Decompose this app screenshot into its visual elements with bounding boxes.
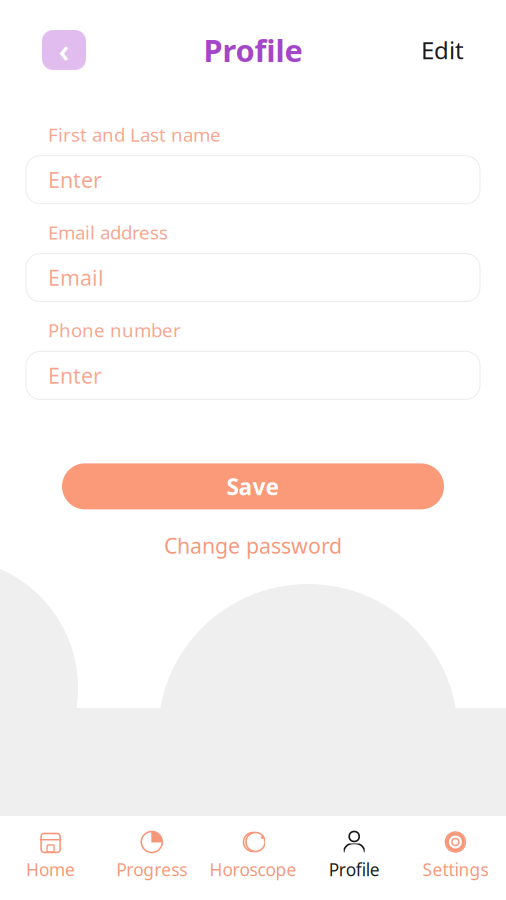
staticText: Profile [329, 858, 380, 881]
button[interactable]: Change password [152, 525, 354, 566]
button[interactable]: Edit [413, 26, 472, 74]
button[interactable]: Settings [405, 824, 506, 888]
button[interactable]: Enter [26, 156, 480, 204]
staticText: Profile [203, 30, 302, 70]
staticText: Progress [116, 858, 187, 881]
button[interactable]: Email [26, 254, 480, 302]
staticText: Email [48, 263, 104, 292]
staticText: Phone number [48, 318, 181, 342]
button[interactable]: Home [0, 824, 101, 888]
staticText: Enter [48, 166, 102, 194]
staticText: Home [26, 858, 75, 881]
button[interactable]: Save [62, 463, 444, 509]
button[interactable]: Horoscope [202, 824, 304, 888]
button[interactable]: Enter [26, 351, 480, 399]
button[interactable]: Progress [101, 824, 202, 888]
staticText: Settings [422, 858, 488, 881]
button[interactable]: Profile [304, 824, 405, 888]
staticText: Save [226, 471, 279, 501]
staticText: ‹ [58, 29, 69, 71]
button[interactable]: Back [42, 30, 86, 70]
staticText: First and Last name [48, 122, 221, 147]
staticText: Edit [421, 34, 464, 66]
staticText: Horoscope [209, 858, 296, 881]
staticText: Email address [48, 220, 168, 245]
staticText: Change password [164, 531, 342, 560]
staticText: Enter [48, 361, 102, 389]
